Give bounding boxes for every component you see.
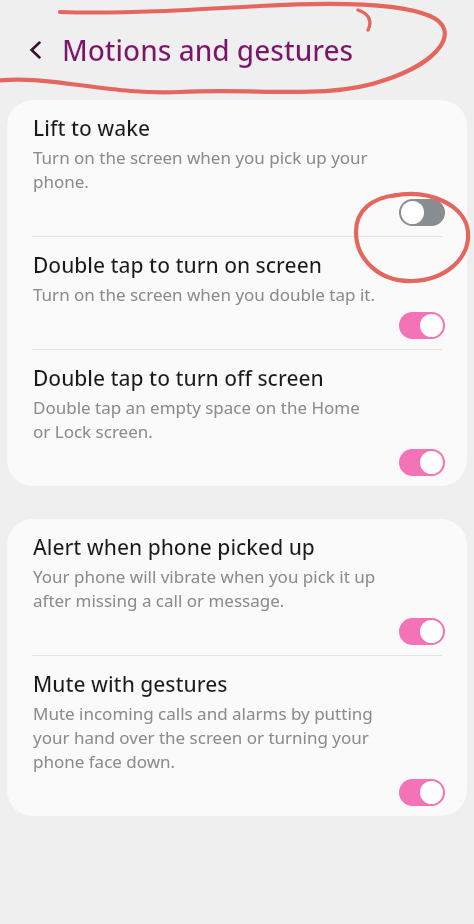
- staticText: Double tap an empty space on the Home or…: [33, 396, 379, 443]
- button[interactable]: Mute with gestures: [7, 656, 467, 816]
- button[interactable]: Lift to wake: [7, 100, 467, 236]
- staticText: Double tap to turn on screen: [33, 251, 322, 280]
- button[interactable]: Toggle on: [399, 779, 445, 806]
- staticText: Motions and gestures: [62, 31, 354, 69]
- button[interactable]: Toggle off: [399, 199, 445, 226]
- staticText: Turn on the screen when you double tap i…: [33, 283, 379, 306]
- staticText: Your phone will vibrate when you pick it…: [33, 565, 379, 612]
- button[interactable]: Toggle on: [399, 449, 445, 476]
- button[interactable]: Alert when phone picked up: [7, 519, 467, 655]
- button[interactable]: Double tap to turn off screen: [7, 350, 467, 486]
- button[interactable]: Toggle on: [399, 312, 445, 339]
- staticText: Turn on the screen when you pick up your…: [33, 146, 379, 193]
- staticText: Lift to wake: [33, 114, 150, 143]
- staticText: Mute with gestures: [33, 670, 228, 699]
- button[interactable]: Back: [18, 32, 54, 68]
- button[interactable]: Toggle on: [399, 618, 445, 645]
- button[interactable]: Double tap to turn on screen: [7, 237, 467, 349]
- staticText: Mute incoming calls and alarms by puttin…: [33, 702, 379, 773]
- staticText: Alert when phone picked up: [33, 533, 315, 562]
- staticText: Double tap to turn off screen: [33, 364, 324, 393]
